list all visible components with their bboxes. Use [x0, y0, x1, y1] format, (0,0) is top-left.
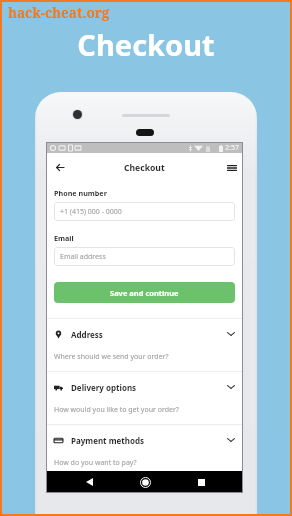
staticText: Save and continue [110, 288, 179, 298]
button[interactable]: Recents [191, 472, 211, 492]
button[interactable]: Back [79, 472, 99, 492]
staticText: Where should we send your order? [54, 352, 169, 362]
staticText: +1 (415) 000 - 0000 [60, 207, 122, 217]
staticText: Checkout [0, 25, 292, 64]
staticText: Checkout [124, 162, 165, 174]
button[interactable]: Email address [54, 247, 235, 266]
staticText: Email [54, 233, 74, 243]
button[interactable]: Home [135, 472, 155, 492]
staticText: Address [71, 329, 103, 340]
staticText: How would you like to get your order? [54, 405, 179, 415]
button[interactable]: Save and continue [54, 282, 235, 303]
staticText: Delivery options [71, 382, 137, 393]
staticText: How do you want to pay? [54, 458, 137, 468]
staticText: Phone number [54, 188, 107, 198]
button[interactable]: Delivery options [46, 371, 243, 424]
button[interactable]: +1 (415) 000 - 0000 [54, 202, 235, 221]
staticText: hack-cheat.org [8, 4, 110, 22]
staticText: Payment methods [71, 435, 144, 446]
button[interactable]: Back [49, 157, 70, 178]
button[interactable]: Menu [221, 157, 242, 178]
staticText: Email address [60, 252, 106, 262]
button[interactable]: Payment methods [46, 424, 243, 477]
staticText: 2:57 [225, 143, 239, 153]
button[interactable]: Address [46, 318, 243, 371]
